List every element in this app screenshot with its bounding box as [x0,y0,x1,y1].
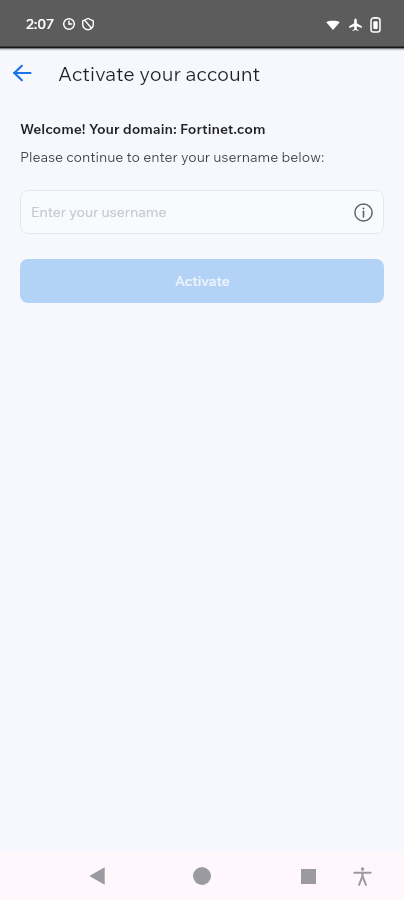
button[interactable]: Home [181,855,223,897]
staticText: 2:07 [26,15,55,33]
staticText: Activate your account [58,61,261,86]
button[interactable]: Accessibility [341,855,383,897]
staticText: Activate [175,272,230,290]
button[interactable]: Back [4,55,40,91]
staticText: Enter your username [31,203,167,221]
button[interactable]: Enter your username [20,190,384,234]
staticText: Please continue to enter your username b… [20,148,325,166]
button[interactable]: Back [76,855,118,897]
staticText: Welcome! Your domain: Fortinet.com [20,120,266,138]
button[interactable]: Activate [20,259,384,303]
button[interactable]: Information [351,200,375,224]
button[interactable]: Recent apps [287,855,329,897]
